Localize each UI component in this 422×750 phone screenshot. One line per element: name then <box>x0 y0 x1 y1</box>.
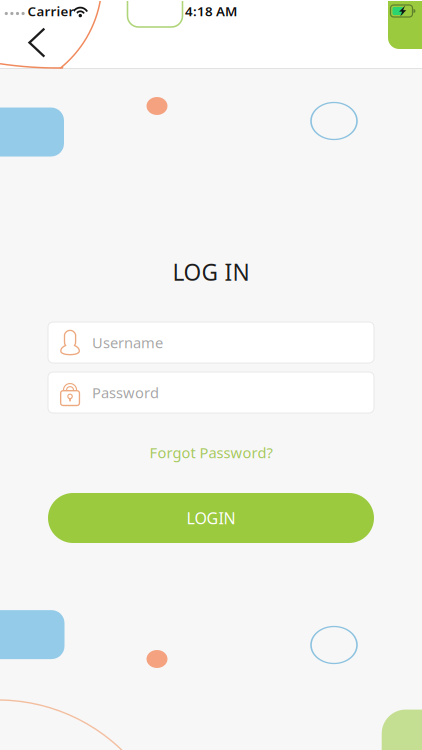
button[interactable]: LOGIN <box>48 493 374 543</box>
button[interactable]: Back <box>15 23 59 63</box>
button[interactable]: Forgot Password? <box>139 435 282 470</box>
staticText: Forgot Password? <box>149 443 272 462</box>
staticText: LOGIN <box>186 507 235 529</box>
staticText: Username <box>92 333 163 352</box>
staticText: Password <box>92 383 159 402</box>
staticText: 4:18 AM <box>185 2 237 20</box>
staticText: Carrier <box>27 2 74 20</box>
staticText: LOG IN <box>172 257 249 287</box>
